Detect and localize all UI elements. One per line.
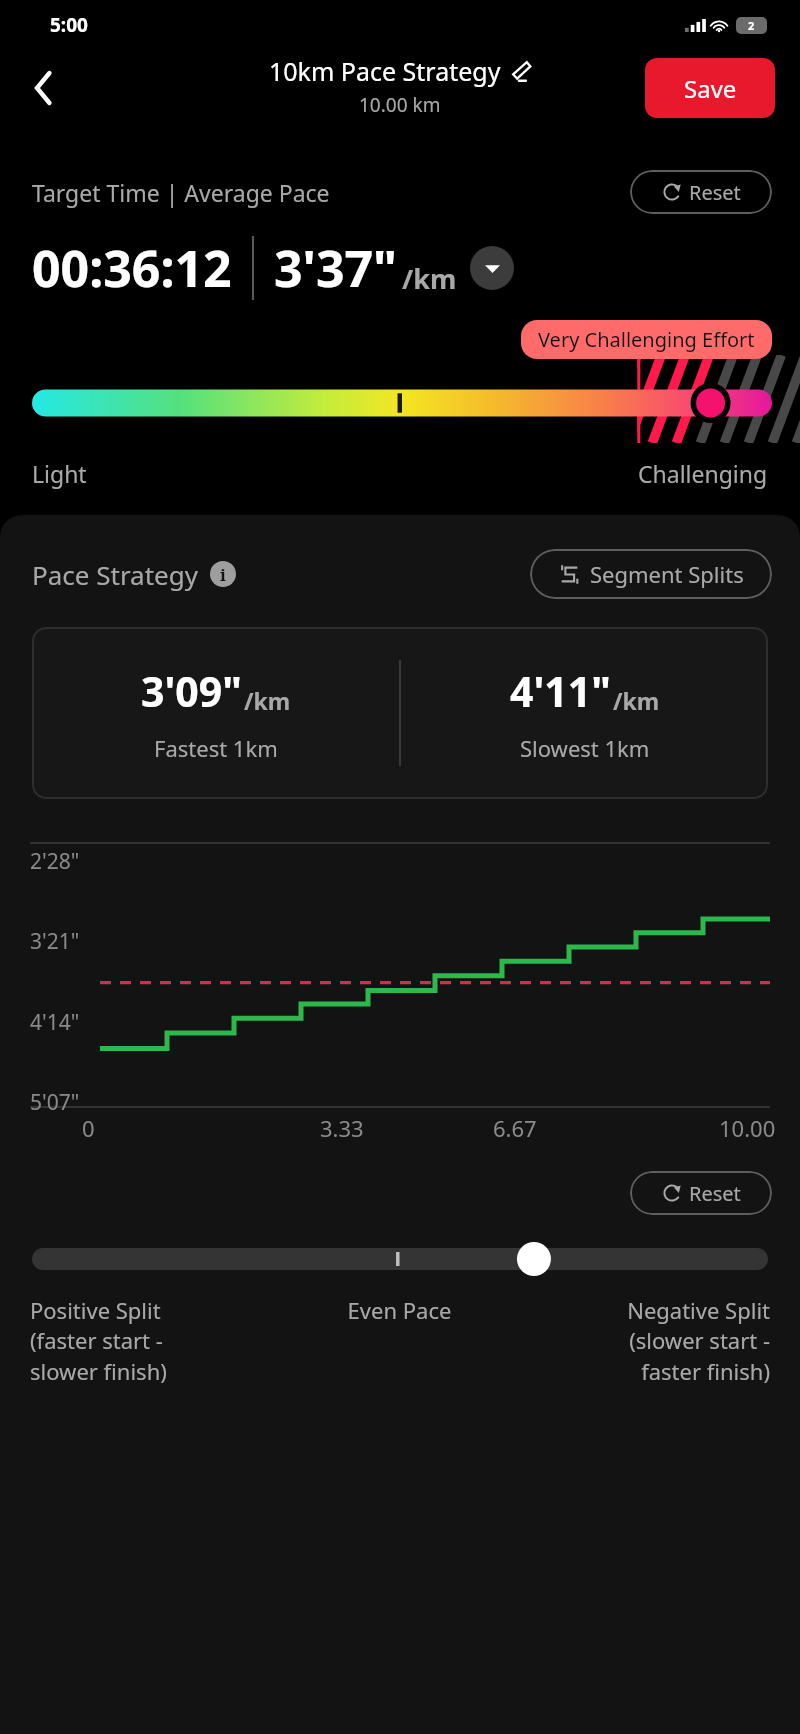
staticText: 3'21": [30, 927, 80, 956]
staticText: Slowest 1km: [520, 733, 650, 763]
staticText: 10km Pace Strategy: [269, 54, 501, 88]
staticText: Very Challenging Effort: [538, 326, 755, 353]
other: Edit name: [510, 61, 531, 82]
staticText: /km: [402, 260, 457, 297]
staticText: 5:00: [50, 12, 88, 38]
staticText: Light: [32, 458, 87, 489]
staticText: i: [220, 563, 226, 586]
button[interactable]: 10km Pace Strategy: [269, 54, 531, 88]
staticText: 4'14": [30, 1008, 80, 1037]
staticText: Negative Split (slower start - faster fi…: [523, 1295, 770, 1387]
staticText: 2'28": [30, 847, 80, 876]
button[interactable]: Very Challenging Effort: [521, 320, 772, 359]
staticText: 0: [82, 1113, 95, 1143]
staticText: Pace Strategy: [32, 557, 198, 592]
button[interactable]: Segment Splits: [530, 549, 772, 599]
button[interactable]: 3'09": [32, 627, 768, 799]
staticText: Save: [684, 72, 737, 105]
staticText: Target Time | Average Pace: [32, 177, 630, 208]
button[interactable]: Back: [18, 63, 68, 113]
staticText: /km: [244, 685, 291, 716]
staticText: Even Pace: [276, 1295, 523, 1325]
staticText: 5'07": [30, 1088, 80, 1117]
staticText: 00:36:12: [32, 234, 232, 302]
button[interactable]: Reset: [630, 1171, 772, 1215]
staticText: Segment Splits: [590, 559, 744, 589]
button[interactable]: Reset: [630, 170, 772, 214]
staticText: 4'11": [510, 663, 611, 719]
staticText: /km: [613, 685, 660, 716]
staticText: 3'09": [141, 663, 242, 719]
staticText: 10.00 km: [359, 92, 441, 118]
staticText: 6.67: [493, 1113, 537, 1143]
staticText: Reset: [689, 179, 741, 206]
button[interactable]: [32, 1241, 768, 1277]
staticText: Fastest 1km: [154, 733, 278, 763]
button[interactable]: Save: [645, 58, 775, 118]
staticText: Positive Split (faster start - slower fi…: [30, 1295, 276, 1387]
staticText: 3'37": [274, 234, 398, 302]
staticText: Reset: [689, 1180, 741, 1207]
staticText: Challenging: [638, 458, 768, 489]
button[interactable]: Info: [210, 561, 236, 587]
staticText: 2: [748, 18, 755, 33]
button[interactable]: Expand pace options: [470, 246, 514, 290]
staticText: 10.00: [719, 1113, 776, 1143]
staticText: 3.33: [320, 1113, 364, 1143]
